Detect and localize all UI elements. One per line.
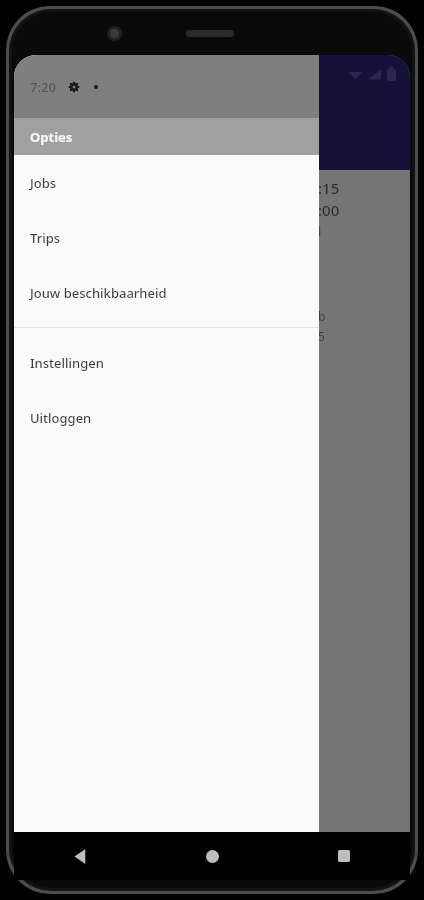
staticText: :15 [318,178,340,198]
button[interactable]: Jouw beschikbaarheid [14,265,319,320]
staticText: Uitloggen [30,409,92,427]
button[interactable]: Instellingen [14,335,319,390]
button[interactable]: Trips [14,210,319,265]
staticText: 5 [318,328,325,344]
staticText: Instellingen [30,354,104,372]
button[interactable]: Jobs [14,155,319,210]
button[interactable]: Home [146,832,278,880]
staticText: Trips [30,229,61,247]
staticText: 7:20 [30,78,56,96]
button[interactable]: Uitloggen [14,390,319,445]
staticText: :00 [318,200,340,220]
button[interactable]: Back [14,832,146,880]
button[interactable]: Opties [14,118,319,155]
staticText: Jouw beschikbaarheid [30,284,167,302]
button[interactable]: Recent apps [278,832,410,880]
staticText: Jobs [30,174,57,192]
staticText: b [318,308,326,324]
staticText: Opties [30,128,73,146]
staticText: l [318,222,322,240]
